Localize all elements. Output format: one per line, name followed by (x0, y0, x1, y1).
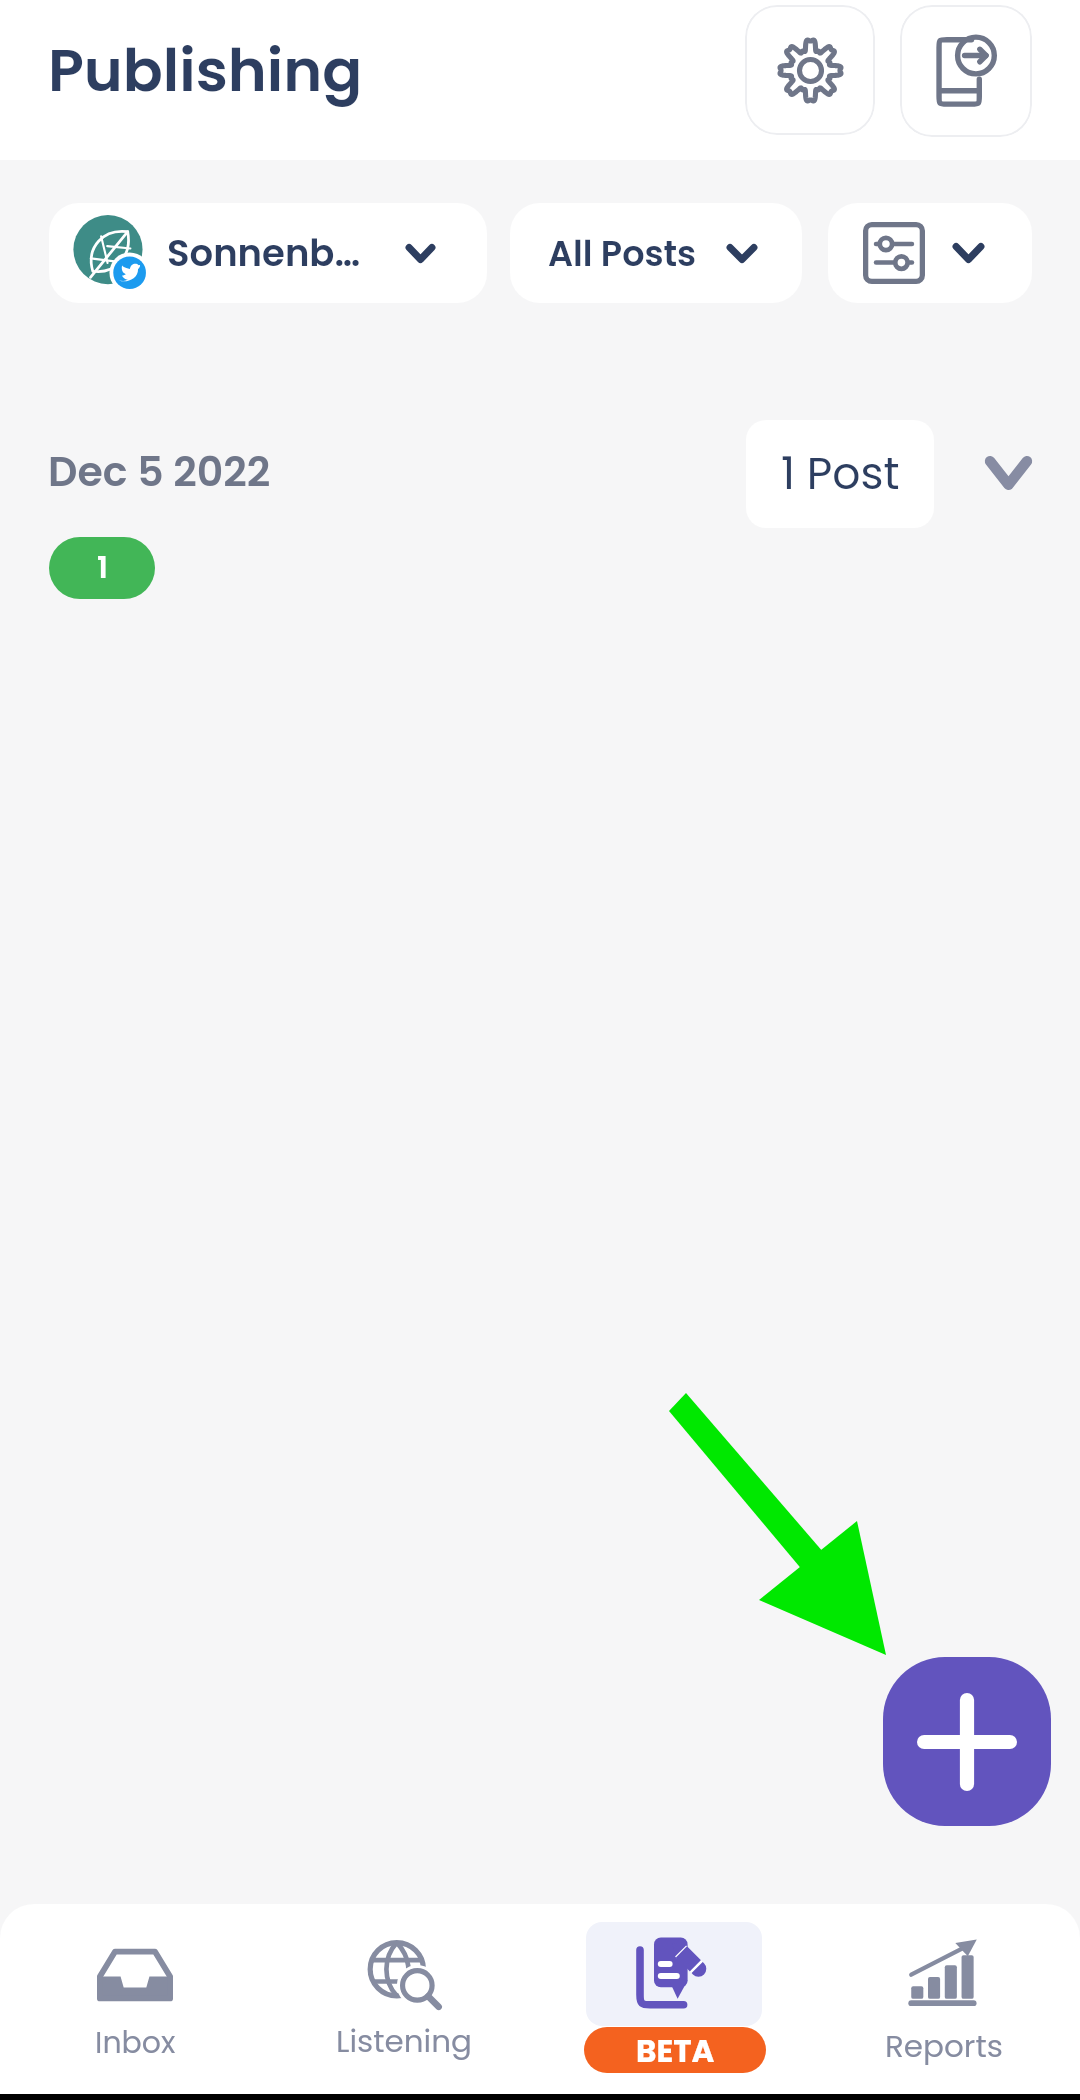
staticText: 1 (97, 547, 108, 589)
staticText: 1 Post (781, 443, 900, 505)
staticText: Listening (336, 2019, 472, 2062)
button[interactable]: Filters (828, 203, 1032, 303)
staticText: All Posts (548, 229, 697, 278)
button[interactable]: Inbox (45, 1936, 225, 2064)
button[interactable]: Reports (854, 1938, 1034, 2067)
button[interactable]: 1 (49, 537, 155, 599)
button[interactable]: Settings (745, 5, 875, 135)
button[interactable]: Expand (966, 438, 1050, 508)
button[interactable]: Publishing (584, 1922, 766, 2073)
staticText: Dec 5 2022 (48, 443, 271, 500)
button[interactable]: All Posts (510, 203, 802, 303)
button[interactable]: Create post (883, 1657, 1051, 1826)
staticText: BETA (636, 2029, 715, 2072)
button[interactable]: Listening (314, 1939, 494, 2062)
staticText: Inbox (95, 2022, 176, 2064)
button[interactable]: Open in app (900, 5, 1032, 137)
button[interactable]: 1 Post (746, 420, 934, 528)
staticText: Sonnenb… (167, 227, 361, 279)
button[interactable]: Sonnenb… (49, 203, 487, 303)
staticText: Publishing (48, 29, 363, 112)
staticText: Reports (885, 2024, 1003, 2067)
